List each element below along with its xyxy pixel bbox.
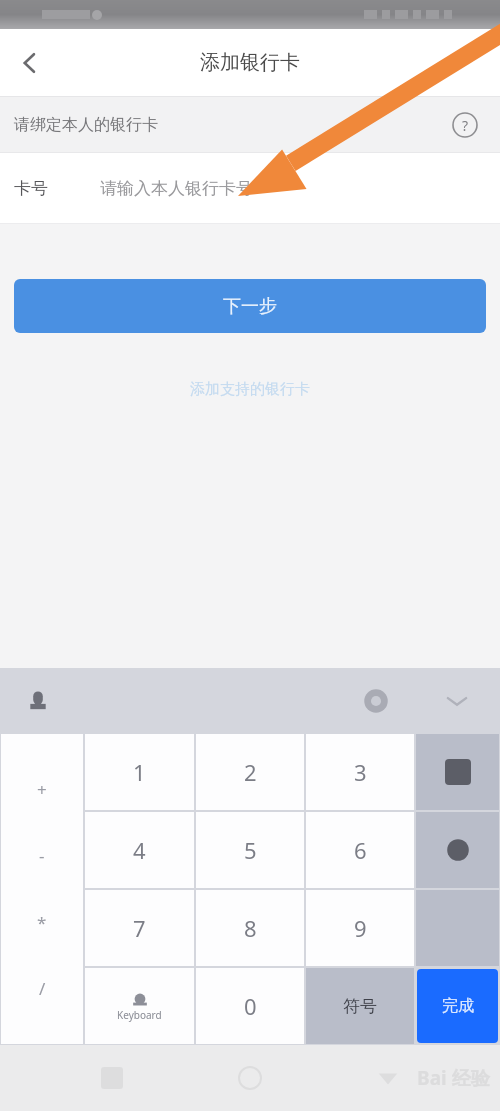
- staticText: 请绑定本人的银行卡: [14, 115, 158, 135]
- button[interactable]: Recents: [86, 1052, 138, 1104]
- staticText: 2: [244, 757, 257, 787]
- button[interactable]: 添加支持的银行卡: [190, 380, 310, 399]
- staticText: 3: [354, 757, 367, 787]
- staticText: -: [39, 844, 45, 867]
- button[interactable]: 8: [196, 890, 304, 966]
- staticText: ?: [462, 116, 469, 135]
- staticText: 7: [133, 913, 146, 943]
- button[interactable]: 6: [306, 812, 414, 888]
- staticText: *: [37, 911, 47, 934]
- staticText: 8: [244, 913, 257, 943]
- button[interactable]: Voice input: [20, 683, 56, 719]
- button[interactable]: 卡号: [0, 153, 500, 223]
- button[interactable]: 0: [196, 968, 304, 1044]
- staticText: 4: [133, 835, 146, 865]
- staticText: 下一步: [223, 295, 277, 318]
- button[interactable]: Help: [448, 108, 482, 142]
- staticText: 卡号: [14, 178, 48, 199]
- button[interactable]: 下一步: [14, 279, 486, 333]
- button[interactable]: Back: [0, 33, 60, 93]
- button[interactable]: Space: [416, 812, 499, 888]
- staticText: 完成: [442, 996, 474, 1016]
- button[interactable]: 3: [306, 734, 414, 810]
- staticText: 0: [244, 991, 257, 1021]
- button[interactable]: Settings: [356, 681, 396, 721]
- button[interactable]: 1: [85, 734, 194, 810]
- staticText: 1: [133, 757, 146, 787]
- staticText: 6: [354, 835, 367, 865]
- button[interactable]: 4: [85, 812, 194, 888]
- button[interactable]: +: [1, 734, 83, 1044]
- button[interactable]: Keyboard: [85, 968, 194, 1044]
- staticText: 符号: [343, 996, 377, 1017]
- button[interactable]: Backspace: [416, 734, 499, 810]
- staticText: Keyboard: [117, 1008, 162, 1022]
- staticText: 添加银行卡: [200, 50, 300, 75]
- staticText: /: [39, 977, 46, 1000]
- button[interactable]: 完成: [417, 969, 498, 1043]
- button[interactable]: 9: [306, 890, 414, 966]
- button[interactable]: Hide keyboard: [436, 680, 478, 722]
- button[interactable]: 7: [85, 890, 194, 966]
- staticText: Bai 经验: [417, 1065, 490, 1091]
- button[interactable]: 符号: [306, 968, 414, 1044]
- staticText: 请输入本人银行卡号: [100, 178, 253, 199]
- staticText: 5: [244, 835, 257, 865]
- button[interactable]: 5: [196, 812, 304, 888]
- staticText: 9: [354, 913, 367, 943]
- staticText: +: [37, 778, 47, 801]
- button[interactable]: 2: [196, 734, 304, 810]
